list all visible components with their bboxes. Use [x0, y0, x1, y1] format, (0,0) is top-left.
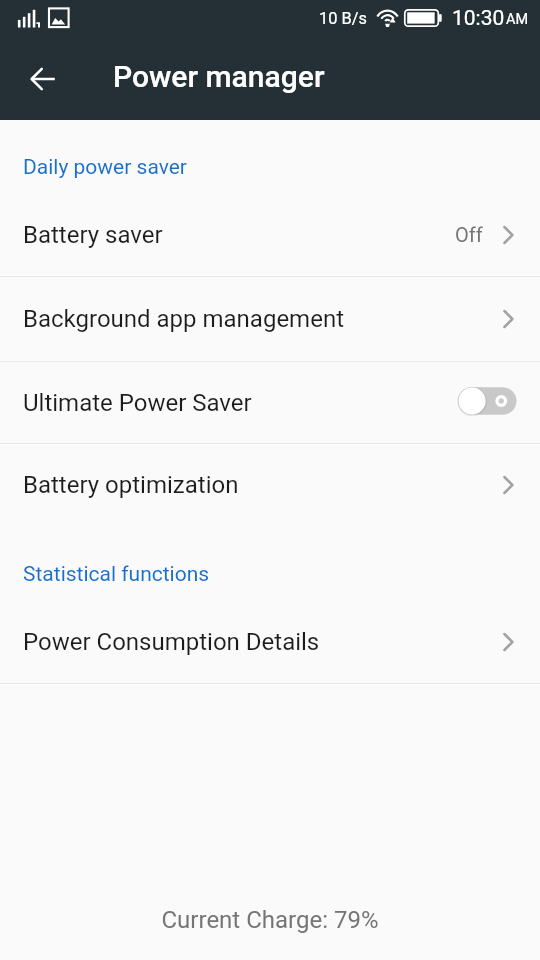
- button[interactable]: Battery optimization: [0, 444, 540, 527]
- staticText: Ultimate Power Saver: [23, 389, 252, 417]
- staticText: Current Charge: 79%: [0, 906, 540, 934]
- staticText: Statistical functions: [23, 562, 210, 587]
- button[interactable]: Background app management: [0, 277, 540, 361]
- staticText: Daily power saver: [23, 155, 187, 180]
- staticText: Battery saver: [23, 221, 163, 249]
- button[interactable]: Power Consumption Details: [0, 600, 540, 683]
- staticText: 10 B/s: [319, 9, 367, 28]
- button[interactable]: Back: [12, 48, 74, 110]
- staticText: Background app management: [23, 305, 344, 333]
- button[interactable]: Battery saver: [0, 193, 540, 276]
- staticText: Battery optimization: [23, 471, 239, 499]
- staticText: Off: [455, 223, 483, 246]
- staticText: 10:30: [452, 6, 505, 31]
- staticText: AM: [506, 11, 529, 28]
- button[interactable]: Ultimate Power Saver: [0, 362, 540, 443]
- staticText: Power manager: [113, 59, 325, 94]
- staticText: Power Consumption Details: [23, 628, 320, 656]
- button[interactable]: Ultimate Power Saver toggle: [457, 385, 518, 417]
